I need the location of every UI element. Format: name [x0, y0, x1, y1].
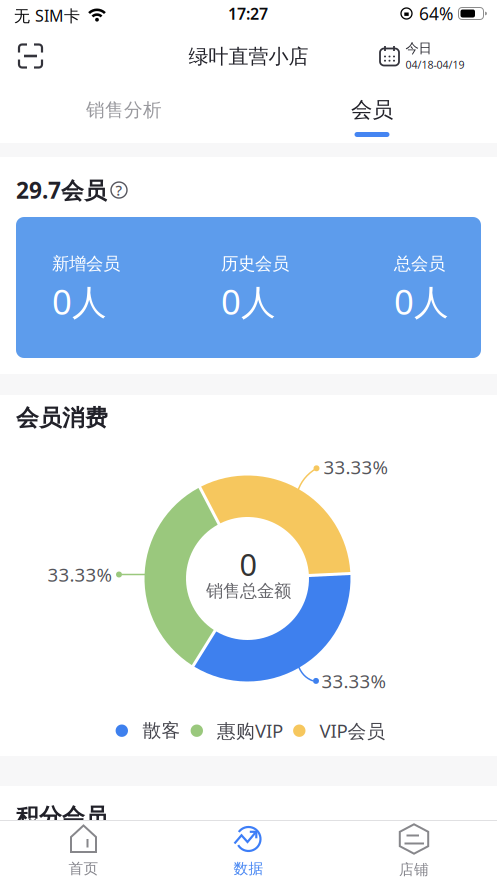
staticText: 29.7会员: [16, 175, 107, 205]
staticText: 历史会员: [221, 253, 289, 274]
staticText: VIP会员: [319, 718, 385, 743]
staticText: 积分会员: [16, 803, 108, 831]
button[interactable]: 会员说明: [110, 181, 128, 199]
staticText: 0: [239, 544, 257, 584]
button[interactable]: 销售分析: [44, 90, 204, 130]
button[interactable]: 选择日期: [379, 40, 464, 72]
staticText: 0人: [394, 278, 449, 324]
staticText: 销售分析: [86, 98, 162, 121]
button[interactable]: 数据: [188, 822, 308, 880]
staticText: 首页: [68, 859, 98, 877]
staticText: 惠购VIP: [217, 718, 283, 743]
staticText: 数据: [233, 859, 263, 877]
button[interactable]: 扫码: [10, 36, 50, 76]
button[interactable]: 首页: [23, 822, 143, 880]
staticText: 销售总金额: [206, 580, 291, 602]
button[interactable]: 会员: [292, 90, 452, 130]
staticText: 今日: [405, 40, 431, 57]
staticText: 0人: [221, 278, 276, 324]
staticText: 64%: [419, 2, 453, 25]
staticText: 04/18-04/19: [405, 58, 464, 72]
staticText: 会员: [351, 97, 393, 123]
staticText: 新增会员: [52, 253, 120, 274]
staticText: 无 SIM卡: [14, 5, 80, 26]
staticText: ?: [115, 180, 122, 200]
staticText: 0人: [52, 278, 107, 324]
button[interactable]: 店铺: [354, 822, 474, 880]
staticText: 33.33%: [323, 455, 388, 479]
staticText: 店铺: [399, 860, 429, 878]
staticText: 33.33%: [47, 562, 112, 587]
staticText: 总会员: [394, 253, 445, 274]
staticText: 绿叶直营小店: [188, 44, 308, 69]
staticText: 17:27: [228, 3, 268, 24]
staticText: 会员消费: [16, 404, 108, 432]
staticText: 33.33%: [321, 669, 386, 693]
staticText: 散客: [142, 719, 180, 742]
